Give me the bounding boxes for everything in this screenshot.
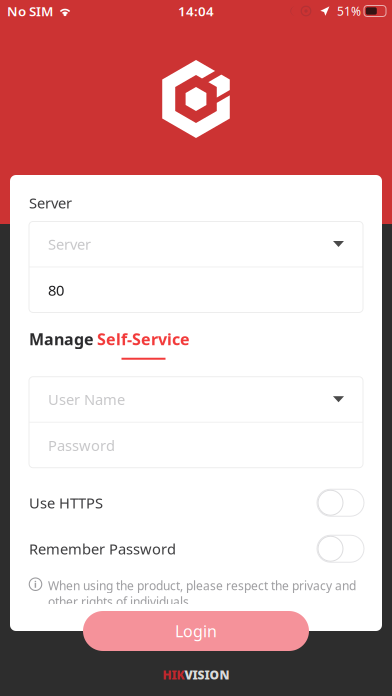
staticText: VISION <box>184 667 229 683</box>
staticText: No SIM <box>7 2 53 20</box>
button[interactable]: Manage <box>29 328 94 360</box>
staticText: Password <box>48 435 115 455</box>
staticText: Use HTTPS <box>29 493 103 512</box>
staticText: Self-Service <box>97 328 190 350</box>
staticText: Login <box>175 620 217 642</box>
button[interactable]: Use HTTPS <box>10 480 382 526</box>
staticText: Server <box>29 193 72 212</box>
staticText: Server <box>48 234 91 254</box>
button[interactable]: Remember Password <box>10 526 382 572</box>
staticText: 14:04 <box>178 2 214 20</box>
button[interactable]: Self-Service <box>97 328 190 360</box>
staticText: User Name <box>48 389 125 409</box>
staticText: Manage <box>29 328 94 350</box>
staticText: 80 <box>48 280 64 300</box>
staticText: When using the product, please respect t… <box>48 578 356 610</box>
staticText: Remember Password <box>29 539 176 558</box>
staticText: i <box>34 578 37 590</box>
staticText: 51% <box>337 3 361 19</box>
button[interactable]: Login <box>83 611 309 651</box>
staticText: HIK <box>162 667 184 683</box>
